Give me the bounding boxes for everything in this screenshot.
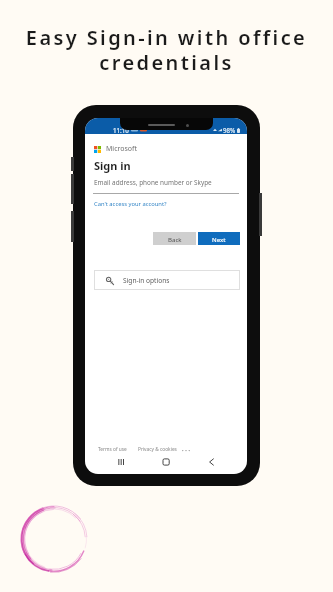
button[interactable]: Terms of use bbox=[98, 446, 127, 453]
button[interactable]: More options bbox=[182, 447, 190, 452]
button[interactable]: Home bbox=[160, 456, 172, 468]
button[interactable]: Can't access your account? bbox=[94, 200, 167, 208]
staticText: 11:10 bbox=[113, 126, 129, 134]
staticText: Sign in bbox=[94, 158, 131, 173]
button[interactable]: Back bbox=[206, 456, 218, 468]
button[interactable]: Back bbox=[153, 232, 196, 245]
staticText: Microsoft bbox=[106, 144, 138, 154]
staticText: Sign-in options bbox=[123, 276, 170, 285]
staticText: Next bbox=[212, 235, 226, 243]
staticText: Back bbox=[168, 235, 182, 243]
staticText: Email address, phone number or Skype bbox=[94, 178, 212, 187]
staticText: 98% bbox=[223, 126, 236, 134]
button[interactable]: Recent apps bbox=[115, 456, 127, 468]
button[interactable]: Sign-in options bbox=[94, 270, 240, 290]
staticText: Easy Sign-in with office credentials bbox=[0, 24, 333, 76]
button[interactable]: Privacy & cookies bbox=[138, 446, 177, 453]
button[interactable]: Next bbox=[198, 232, 240, 245]
